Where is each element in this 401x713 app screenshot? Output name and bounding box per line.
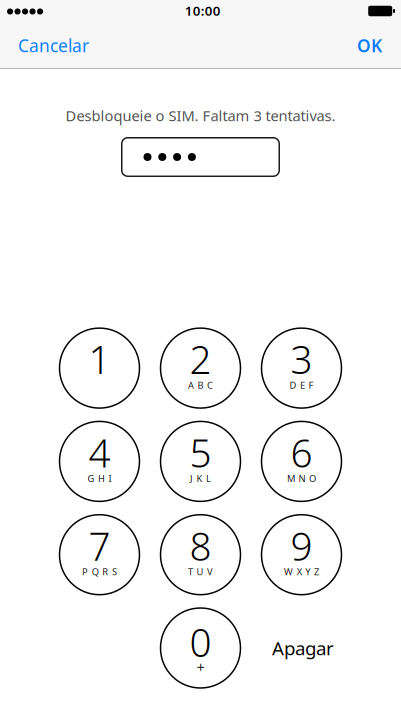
staticText: 8 [189,520,211,571]
staticText: 0 [189,616,211,668]
staticText: A B C [188,379,213,391]
staticText: 5 [189,427,211,478]
staticText: 7 [88,520,110,571]
staticText: 9 [290,520,312,571]
staticText: + [196,657,204,677]
button[interactable]: 6 [261,421,341,501]
staticText: W X Y Z [284,565,319,578]
button[interactable]: 5 [160,421,240,501]
staticText: 4 [88,427,110,478]
button[interactable]: 8 [160,515,240,595]
staticText: T U V [188,565,213,578]
staticText: Cancelar [18,34,89,57]
button[interactable]: Cancelar [18,21,89,68]
button[interactable]: 9 [261,515,341,595]
button[interactable]: 2 [160,328,240,408]
staticText: OK [357,34,382,57]
button[interactable]: PIN do SIM [121,137,280,177]
button[interactable]: 3 [261,328,341,408]
button[interactable]: 7 [59,515,139,595]
staticText: P Q R S [82,565,117,578]
button[interactable]: Apagar [261,608,341,688]
staticText: G H I [87,472,112,485]
staticText: Desbloqueie o SIM. Faltam 3 tentativas. [65,106,335,125]
staticText: D E F [289,379,314,391]
staticText: 6 [290,427,312,478]
button[interactable]: 4 [59,421,139,501]
button[interactable]: 0 [160,608,240,688]
staticText: 3 [290,333,312,385]
button[interactable]: OK [357,21,382,68]
staticText: 10:00 [185,2,221,19]
staticText: 1 [88,333,110,385]
button[interactable]: 1 [59,328,139,408]
staticText: Apagar [272,636,334,660]
staticText: M N O [287,472,316,485]
staticText: 2 [189,333,211,385]
staticText: J K L [190,472,211,485]
